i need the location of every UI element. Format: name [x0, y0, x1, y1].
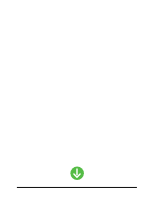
button[interactable]: Download: [70, 166, 84, 180]
